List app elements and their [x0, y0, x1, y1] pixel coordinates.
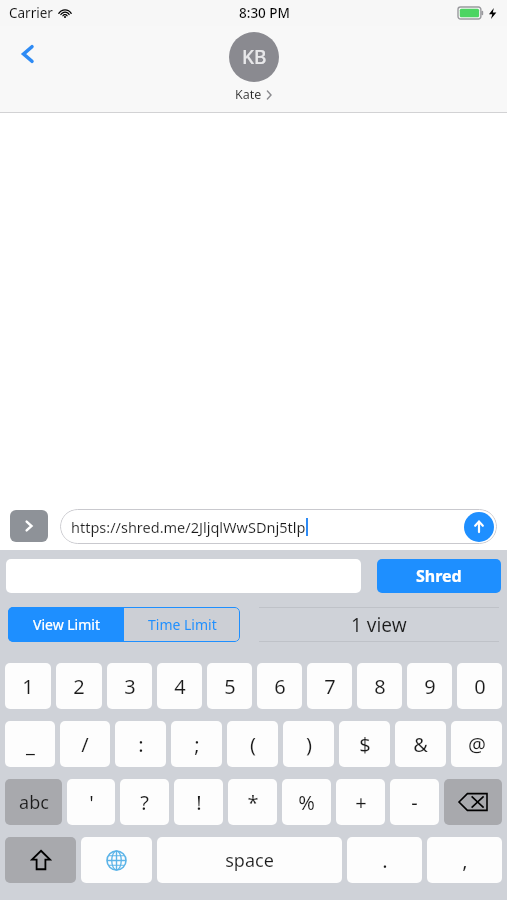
staticText: space: [225, 848, 274, 873]
staticText: 9: [424, 673, 436, 700]
button[interactable]: Send: [464, 512, 494, 542]
button[interactable]: 3: [107, 663, 152, 709]
staticText: 0: [474, 673, 486, 700]
button[interactable]: $: [339, 721, 390, 767]
staticText: .: [382, 847, 388, 874]
staticText: Time Limit: [148, 615, 217, 634]
staticText: Shred: [416, 565, 462, 587]
button[interactable]: 5: [207, 663, 252, 709]
staticText: _: [26, 731, 35, 758]
button[interactable]: 4: [157, 663, 202, 709]
button[interactable]: ?: [120, 779, 169, 825]
staticText: 3: [124, 673, 136, 700]
button[interactable]: 2: [56, 663, 102, 709]
button[interactable]: 8: [357, 663, 402, 709]
button[interactable]: Expand: [10, 510, 48, 542]
staticText: -: [411, 789, 418, 816]
button[interactable]: ,: [427, 837, 502, 883]
staticText: +: [355, 789, 367, 816]
staticText: :: [138, 731, 144, 758]
button[interactable]: :: [115, 721, 166, 767]
button[interactable]: Change language: [81, 837, 152, 883]
staticText: 7: [324, 673, 336, 700]
staticText: 2: [73, 673, 85, 700]
button[interactable]: -: [390, 779, 439, 825]
button[interactable]: 1 view: [259, 607, 499, 642]
button[interactable]: abc: [5, 779, 62, 825]
button[interactable]: +: [336, 779, 385, 825]
button[interactable]: space: [157, 837, 342, 883]
staticText: 6: [274, 673, 286, 700]
staticText: 1: [22, 673, 34, 700]
button[interactable]: Back: [6, 32, 50, 76]
staticText: 1 view: [351, 612, 407, 638]
staticText: *: [247, 789, 259, 816]
staticText: 8: [374, 673, 386, 700]
staticText: 8:30 PM: [239, 4, 290, 22]
staticText: 4: [174, 673, 186, 700]
button[interactable]: 1: [5, 663, 51, 709]
button[interactable]: ;: [171, 721, 222, 767]
staticText: 5: [224, 673, 236, 700]
staticText: KB: [242, 44, 267, 70]
staticText: !: [196, 789, 202, 816]
button[interactable]: Time Limit: [124, 607, 240, 642]
staticText: ): [306, 731, 312, 758]
staticText: ;: [194, 731, 200, 758]
button[interactable]: !: [174, 779, 223, 825]
button[interactable]: ': [67, 779, 115, 825]
button[interactable]: &: [395, 721, 446, 767]
button[interactable]: .: [347, 837, 422, 883]
staticText: ': [89, 789, 94, 816]
button[interactable]: Shift: [5, 837, 76, 883]
button[interactable]: 9: [407, 663, 452, 709]
button[interactable]: 6: [257, 663, 302, 709]
button[interactable]: 0: [457, 663, 502, 709]
staticText: /: [81, 731, 89, 758]
button[interactable]: 7: [307, 663, 352, 709]
button[interactable]: https://shred.me/2JljqlWwSDnj5tlp: [60, 509, 497, 544]
button[interactable]: *: [228, 779, 277, 825]
staticText: $: [359, 731, 371, 758]
staticText: View Limit: [33, 615, 100, 634]
staticText: &: [413, 731, 428, 758]
button[interactable]: /: [60, 721, 110, 767]
button[interactable]: %: [282, 779, 331, 825]
staticText: https://shred.me/2JljqlWwSDnj5tlp: [71, 517, 306, 537]
staticText: ?: [140, 789, 149, 816]
staticText: ,: [462, 847, 468, 874]
button[interactable]: Backspace: [444, 779, 502, 825]
staticText: abc: [19, 790, 49, 815]
button[interactable]: Shred: [377, 559, 501, 593]
staticText: Kate: [235, 86, 262, 103]
staticText: %: [298, 789, 315, 816]
staticText: Carrier: [9, 4, 53, 22]
button[interactable]: _: [5, 721, 55, 767]
button[interactable]: (: [227, 721, 278, 767]
button[interactable]: ): [283, 721, 334, 767]
button[interactable]: View Limit: [8, 607, 124, 642]
button[interactable]: @: [451, 721, 502, 767]
button[interactable]: KB: [229, 32, 279, 103]
staticText: (: [250, 731, 256, 758]
staticText: @: [468, 731, 486, 758]
